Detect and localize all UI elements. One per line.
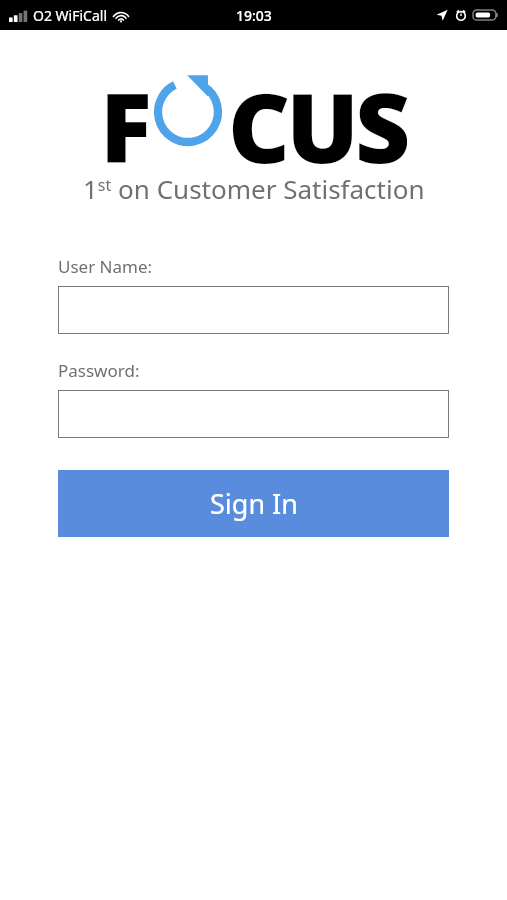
staticText: 19:03 — [236, 6, 272, 25]
staticText: 1st on Customer Satisfaction — [83, 171, 425, 206]
staticText: Password: — [58, 359, 140, 382]
button[interactable] — [58, 286, 449, 334]
staticText: O2 WiFiCall — [33, 6, 108, 25]
staticText: Sign In — [210, 485, 298, 522]
staticText: User Name: — [58, 255, 153, 278]
button[interactable] — [58, 390, 449, 438]
staticText: F — [100, 60, 149, 165]
button[interactable]: Sign In — [58, 470, 449, 537]
staticText: CUS — [228, 60, 407, 165]
